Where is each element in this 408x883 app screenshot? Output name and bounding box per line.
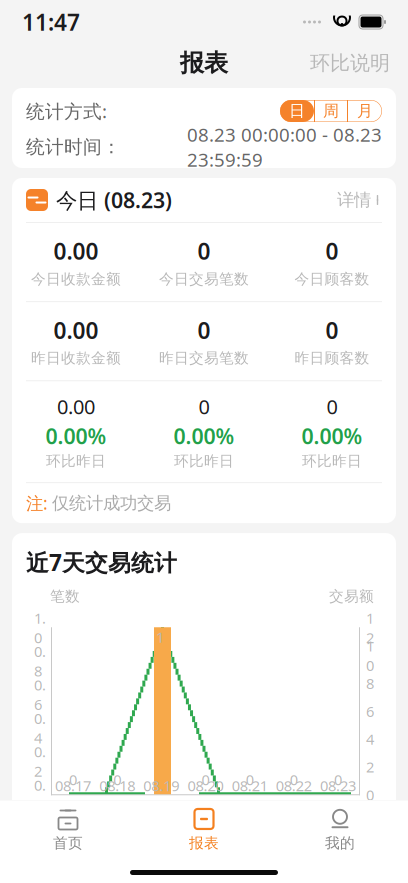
staticText: 今日 (08.23) (56, 186, 172, 214)
staticText: 交易额 (329, 587, 374, 605)
staticText: 0.00 (53, 315, 98, 345)
staticText: 1.0 (34, 608, 46, 647)
staticText: 0 (197, 315, 210, 345)
staticText: 4 (366, 729, 374, 749)
staticText: 昨日交易笔数 (159, 349, 249, 367)
staticText: 环比说明 (310, 51, 390, 75)
staticText: 0.6 (34, 675, 46, 714)
staticText: 今日收款金额 (31, 270, 121, 288)
staticText: 我的 (325, 834, 355, 852)
staticText: 0 (198, 393, 209, 420)
staticText: 0.00% (45, 422, 106, 450)
staticText: 08.17 (55, 776, 91, 795)
staticText: 日 (289, 101, 305, 121)
button[interactable]: 首页 (0, 801, 136, 852)
staticText: 08.18 (99, 776, 135, 795)
staticText: 08.21 (232, 776, 268, 795)
staticText: 11:47 (22, 7, 80, 37)
staticText: 0 (334, 770, 342, 789)
staticText: 0 (69, 770, 77, 789)
button[interactable]: 月 (348, 100, 382, 122)
staticText: 环比昨日 (302, 452, 362, 470)
staticText: 1 (156, 627, 164, 647)
staticText: 报表 (189, 834, 219, 852)
staticText: 0.00% (173, 422, 234, 450)
staticText: 0 (325, 236, 338, 266)
staticText: 0.8 (34, 642, 46, 681)
button[interactable]: 我的 (272, 801, 408, 852)
staticText: 注: (26, 492, 48, 515)
button[interactable]: 报表 (136, 801, 272, 852)
staticText: 笔数 (50, 587, 80, 605)
staticText: 统计方式: (26, 99, 107, 123)
staticText: 08.19 (143, 776, 179, 795)
staticText: 08.22 (276, 776, 312, 795)
staticText: 0 (197, 236, 210, 266)
staticText: 0 (325, 315, 338, 345)
staticText: 12 (366, 608, 374, 647)
button[interactable]: 环比说明 (310, 51, 390, 75)
staticText: 报表 (180, 48, 228, 78)
staticText: 昨日收款金额 (31, 349, 121, 367)
button[interactable]: 周 (314, 100, 348, 122)
staticText: 昨日顾客数 (294, 349, 369, 367)
staticText: 0 (366, 785, 374, 804)
staticText: 0.00 (57, 393, 95, 420)
staticText: 08.23 (320, 776, 356, 795)
staticText: 环比昨日 (46, 452, 106, 470)
staticText: 0.00 (53, 236, 98, 266)
staticText: 10 (366, 636, 374, 675)
staticText: 首页 (53, 834, 83, 852)
staticText: 0 (246, 770, 254, 789)
staticText: 08.20 (187, 776, 223, 795)
staticText: 今日顾客数 (294, 270, 369, 288)
staticText: 0.00% (301, 422, 362, 450)
staticText: 6 (366, 701, 374, 721)
staticText: 08.23 00:00:00 - 08.23 23:59:59 (187, 122, 382, 172)
staticText: 环比昨日 (174, 452, 234, 470)
staticText: 0.2 (34, 742, 46, 781)
staticText: 0 (326, 393, 337, 420)
staticText: 统计时间： (26, 135, 121, 158)
staticText: 周 (323, 101, 339, 121)
staticText: 详情 (337, 189, 371, 211)
staticText: 2 (366, 757, 374, 777)
button[interactable]: 日 (280, 100, 314, 122)
staticText: 月 (357, 101, 373, 121)
staticText: 0 (290, 770, 298, 789)
staticText: 0 (201, 770, 209, 789)
staticText: 0.0 (34, 775, 46, 814)
staticText: 0.4 (34, 708, 46, 747)
staticText: 0 (113, 770, 121, 789)
button[interactable]: 详情 (337, 189, 382, 211)
staticText: 今日交易笔数 (159, 270, 249, 288)
staticText: 近7天交易统计 (26, 547, 177, 577)
staticText: 仅统计成功交易 (52, 492, 171, 514)
staticText: 8 (366, 674, 374, 693)
